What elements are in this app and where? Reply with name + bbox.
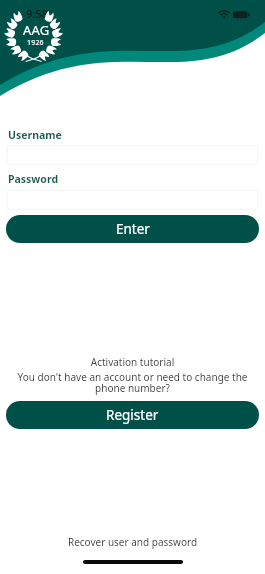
- button[interactable]: Register: [6, 401, 259, 429]
- other: Wi-Fi and battery status: [217, 0, 251, 26]
- button[interactable]: [7, 190, 258, 210]
- staticText: Register: [106, 406, 159, 424]
- other: AAG 1926 club logo: [0, 0, 66, 66]
- button[interactable]: [7, 145, 258, 165]
- staticText: Activation tutorial: [0, 355, 265, 369]
- staticText: AAG: [23, 21, 50, 39]
- staticText: Username: [8, 128, 62, 142]
- button[interactable]: Recover user and password: [0, 533, 265, 551]
- staticText: You don't have an account or need to cha…: [12, 370, 253, 395]
- staticText: 1926: [27, 38, 44, 48]
- staticText: 9:58: [26, 6, 48, 21]
- staticText: Password: [8, 172, 59, 186]
- button[interactable]: Enter: [6, 215, 259, 243]
- staticText: Enter: [116, 220, 150, 238]
